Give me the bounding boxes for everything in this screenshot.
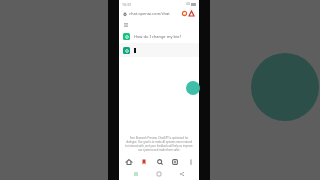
staticText: Free Research Preview. ChatGPT is optimi…	[125, 136, 193, 152]
button[interactable]: More options	[184, 155, 197, 168]
button[interactable]: Bookmarks	[137, 155, 150, 168]
button[interactable]	[119, 43, 199, 57]
button[interactable]: Share	[176, 168, 188, 180]
button[interactable]: Menu	[123, 22, 128, 27]
button[interactable]: chat.openai.com/chat	[129, 11, 181, 16]
button[interactable]: Opera actions	[181, 10, 188, 17]
button[interactable]: Recent apps	[130, 168, 142, 180]
button[interactable]: How do I change my bio?	[119, 29, 199, 43]
other: Secure connection	[123, 12, 127, 16]
button[interactable]: Search	[153, 155, 166, 168]
staticText: 10:33	[122, 2, 131, 7]
button[interactable]: Home	[122, 155, 135, 168]
staticText: chat.openai.com/chat	[129, 11, 170, 16]
staticText: How do I change my bio?	[134, 34, 182, 39]
button[interactable]: Tabs	[168, 155, 181, 168]
staticText: 4G	[186, 2, 190, 6]
button[interactable]: Profile	[188, 10, 195, 17]
button[interactable]: Home	[153, 168, 165, 180]
